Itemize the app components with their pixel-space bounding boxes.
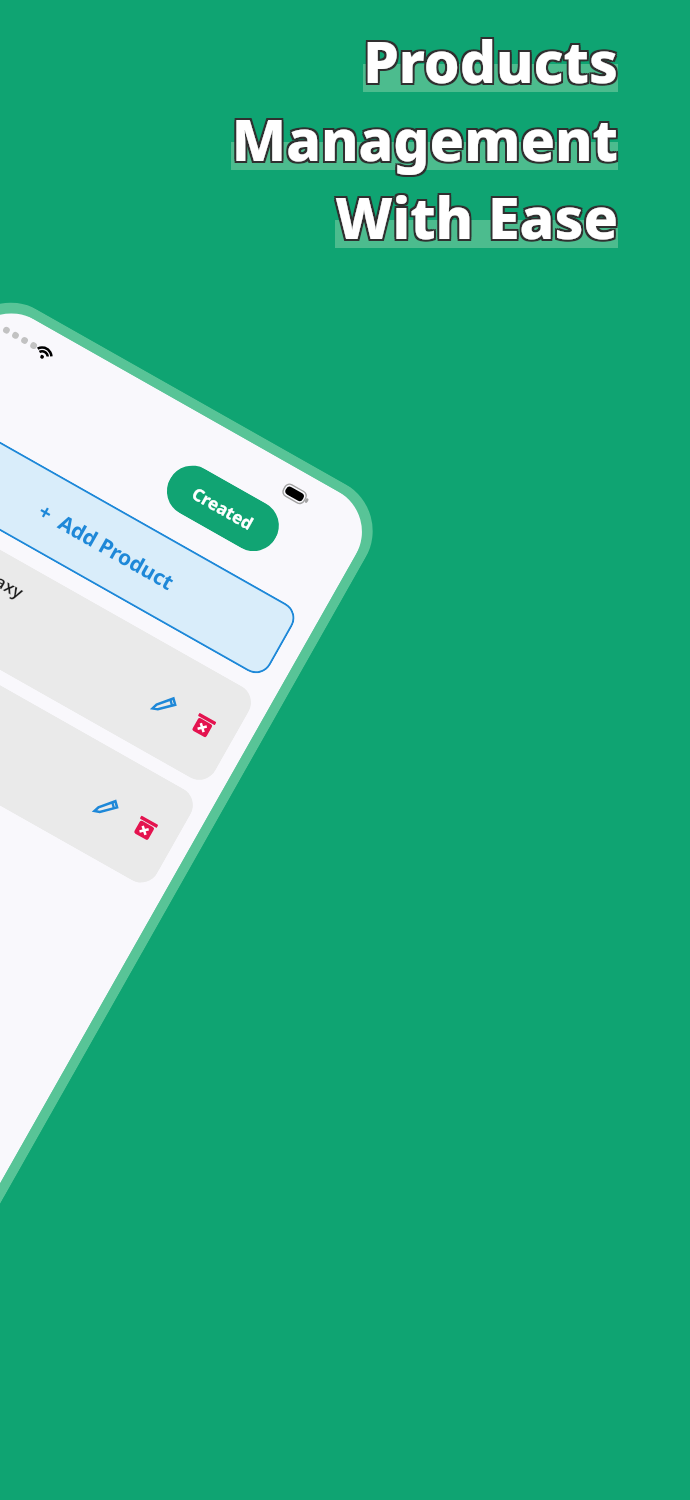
staticText: Products [363,24,618,102]
staticText: Products [361,20,616,98]
staticText: Management [229,100,616,178]
staticText: Management [231,102,618,180]
staticText: With Ease [333,176,616,254]
staticText: Samsung Galaxy [0,516,28,604]
staticText: With Ease [337,176,620,254]
staticText: With Ease [337,178,620,256]
staticText: Management [233,100,620,178]
button[interactable]: + Add Product [0,414,301,679]
staticText: With Ease [333,180,616,258]
staticText: With Ease [335,176,618,254]
staticText: + Add Product [33,497,180,597]
staticText: Management [229,102,616,180]
button[interactable]: Delete product [119,802,171,854]
staticText: Products [363,20,618,98]
button[interactable]: Delete product [177,699,229,751]
staticText: Management [231,98,618,176]
button[interactable]: Edit product [139,678,191,729]
staticText: With Ease [333,178,616,256]
staticText: Products [365,20,620,98]
staticText: Products [363,22,618,100]
staticText: Management [229,98,616,176]
button[interactable]: Dell Monitor [0,596,200,889]
staticText: Products [361,24,616,102]
staticText: Management [233,98,620,176]
staticText: Management [231,100,618,178]
staticText: With Ease [337,180,620,258]
staticText: With Ease [335,180,618,258]
staticText: With Ease [335,178,618,256]
staticText: Products [365,22,620,100]
staticText: Created [188,482,258,535]
button[interactable]: Created [158,456,288,560]
staticText: Products [365,24,620,102]
button[interactable]: Edit product [81,780,132,832]
staticText: Products [361,22,616,100]
button[interactable]: Samsung Galaxy [0,493,258,787]
staticText: Management [233,102,620,180]
